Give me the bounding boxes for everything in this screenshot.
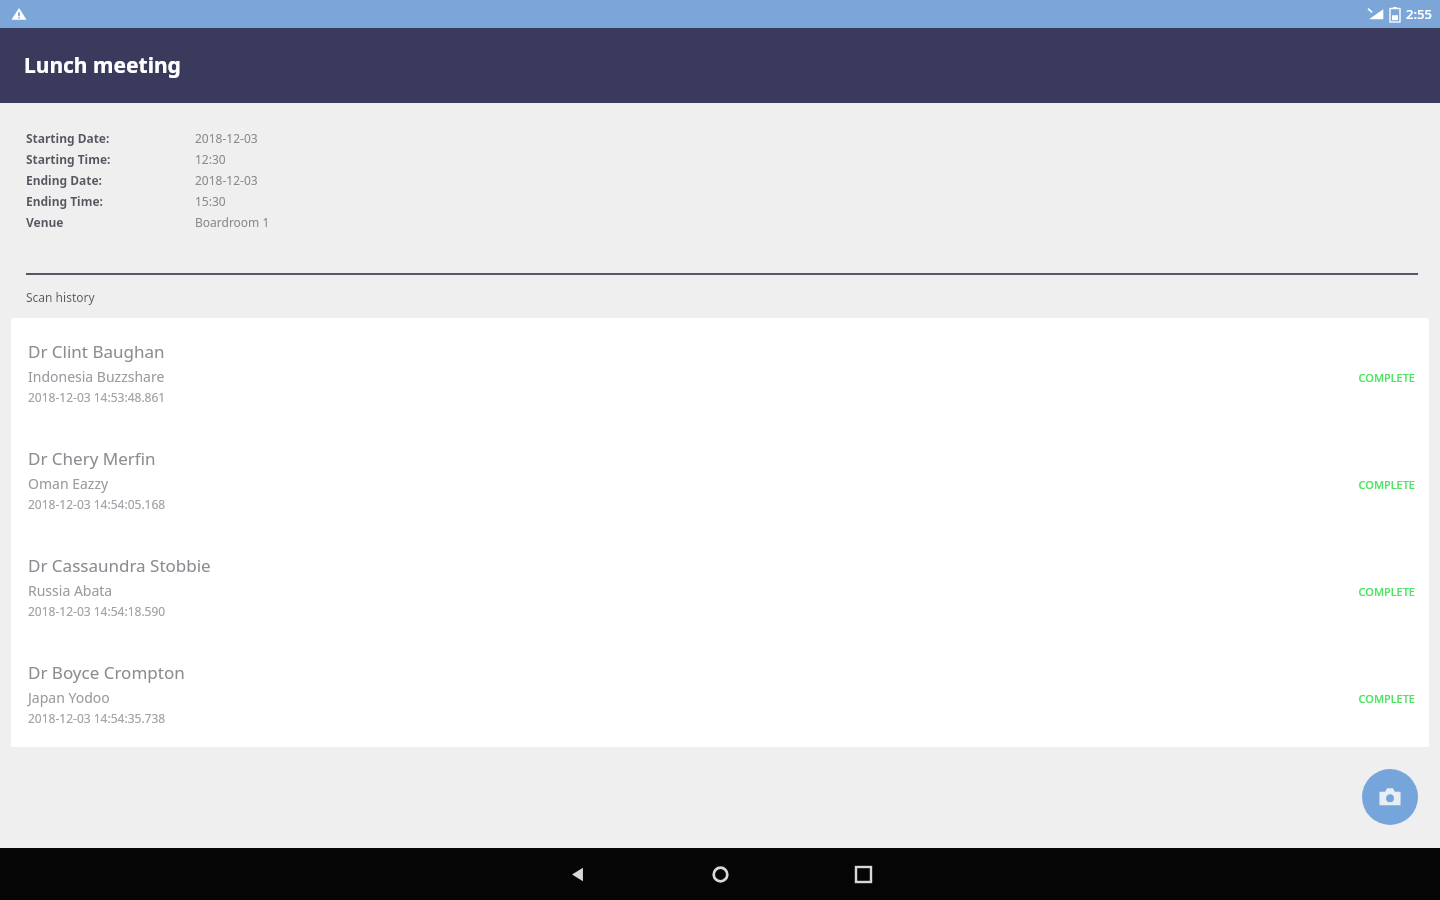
staticText: Ending Date:	[26, 172, 195, 188]
staticText: COMPLETE	[1358, 584, 1415, 599]
staticText: 2018-12-03 14:53:48.861	[28, 389, 166, 405]
staticText: 12:30	[195, 151, 226, 167]
staticText: 2018-12-03 14:54:18.590	[28, 603, 166, 619]
staticText: Dr Chery Merfin	[28, 447, 156, 470]
button[interactable]: COMPLETE	[1358, 370, 1415, 385]
button[interactable]: Recent apps	[843, 848, 883, 900]
button[interactable]: Dr Clint Baughan	[11, 340, 1429, 447]
button[interactable]: COMPLETE	[1358, 584, 1415, 599]
staticText: Japan Yodoo	[28, 688, 110, 707]
staticText: Dr Boyce Crompton	[28, 661, 185, 684]
staticText: 2018-12-03	[195, 130, 258, 146]
staticText: COMPLETE	[1358, 477, 1415, 492]
button[interactable]: Dr Chery Merfin	[11, 447, 1429, 554]
staticText: Dr Clint Baughan	[28, 340, 165, 363]
staticText: Boardroom 1	[195, 214, 270, 230]
staticText: Starting Time:	[26, 151, 195, 167]
button[interactable]: Home	[700, 848, 740, 900]
staticText: Russia Abata	[28, 581, 113, 600]
staticText: Lunch meeting	[24, 51, 181, 80]
staticText: 2018-12-03 14:54:05.168	[28, 496, 166, 512]
staticText: 2:55	[1406, 5, 1432, 23]
staticText: COMPLETE	[1358, 370, 1415, 385]
staticText: Starting Date:	[26, 130, 195, 146]
button[interactable]: Dr Boyce Crompton	[11, 661, 1429, 747]
staticText: Indonesia Buzzshare	[28, 367, 165, 386]
button[interactable]: Dr Cassaundra Stobbie	[11, 554, 1429, 661]
button[interactable]: Back	[557, 848, 597, 900]
button[interactable]: COMPLETE	[1358, 477, 1415, 492]
staticText: Scan history	[26, 289, 95, 305]
staticText: Oman Eazzy	[28, 474, 109, 493]
staticText: 2018-12-03 14:54:35.738	[28, 710, 166, 726]
staticText: 2018-12-03	[195, 172, 258, 188]
staticText: 15:30	[195, 193, 226, 209]
button[interactable]: COMPLETE	[1358, 691, 1415, 706]
staticText: Venue	[26, 214, 195, 230]
button[interactable]: Scan badge with camera	[1362, 769, 1418, 825]
staticText: Ending Time:	[26, 193, 195, 209]
staticText: Dr Cassaundra Stobbie	[28, 554, 211, 577]
staticText: COMPLETE	[1358, 691, 1415, 706]
